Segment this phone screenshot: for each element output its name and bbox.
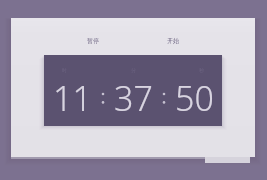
staticText: 时 [62,67,67,73]
staticText: 秒 [199,67,204,73]
staticText: 开始 [167,37,179,45]
staticText: 暂停 [87,37,99,45]
button[interactable]: Timer display [44,55,222,126]
staticText: 分 [131,67,136,73]
staticText: 50 [175,75,214,121]
staticText: 11 [53,75,92,121]
button[interactable]: 开始 [141,33,205,49]
button[interactable]: 暂停 [61,33,125,49]
staticText: 37 [114,75,153,121]
